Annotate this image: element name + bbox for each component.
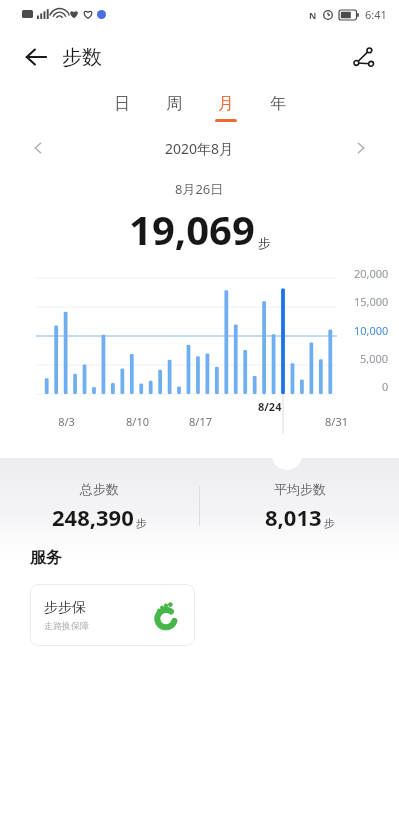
button[interactable]: Back: [14, 35, 58, 79]
staticText: 年: [270, 94, 286, 114]
button[interactable]: 年: [252, 86, 304, 130]
staticText: 15,000: [354, 294, 389, 309]
staticText: 5,000: [360, 351, 389, 366]
staticText: 月: [218, 94, 234, 114]
staticText: 19,069: [129, 202, 255, 256]
staticText: 步: [324, 516, 335, 530]
staticText: 8/31: [325, 414, 348, 429]
staticText: 8/3: [58, 414, 75, 429]
staticText: 服务: [30, 548, 62, 568]
button[interactable]: 周: [148, 86, 200, 130]
staticText: 6:41: [365, 7, 387, 22]
staticText: 8/10: [126, 414, 149, 429]
staticText: 平均步数: [274, 481, 326, 497]
staticText: 走路换保障: [44, 620, 89, 631]
staticText: 2020年8月: [165, 139, 234, 158]
staticText: 248,390: [52, 502, 134, 532]
staticText: 总步数: [80, 481, 119, 497]
staticText: 8月26日: [175, 180, 224, 198]
button[interactable]: Next month: [345, 132, 377, 164]
button[interactable]: Previous month: [22, 132, 54, 164]
staticText: 步步保: [44, 599, 86, 617]
button[interactable]: 步步保: [30, 584, 195, 646]
staticText: 8,013: [265, 502, 322, 532]
staticText: 步数: [62, 45, 102, 70]
staticText: 20,000: [354, 266, 389, 281]
staticText: 0: [382, 379, 389, 394]
button[interactable]: Share: [341, 35, 385, 79]
button[interactable]: 月: [200, 86, 252, 130]
staticText: 周: [166, 94, 182, 114]
button[interactable]: 日: [96, 86, 148, 130]
staticText: 10,000: [354, 323, 389, 338]
staticText: 步: [136, 516, 147, 530]
staticText: 8/17: [189, 414, 212, 429]
staticText: 8/24: [258, 399, 282, 414]
staticText: 步: [258, 235, 271, 251]
staticText: 日: [114, 94, 130, 114]
staticText: N: [309, 9, 317, 21]
